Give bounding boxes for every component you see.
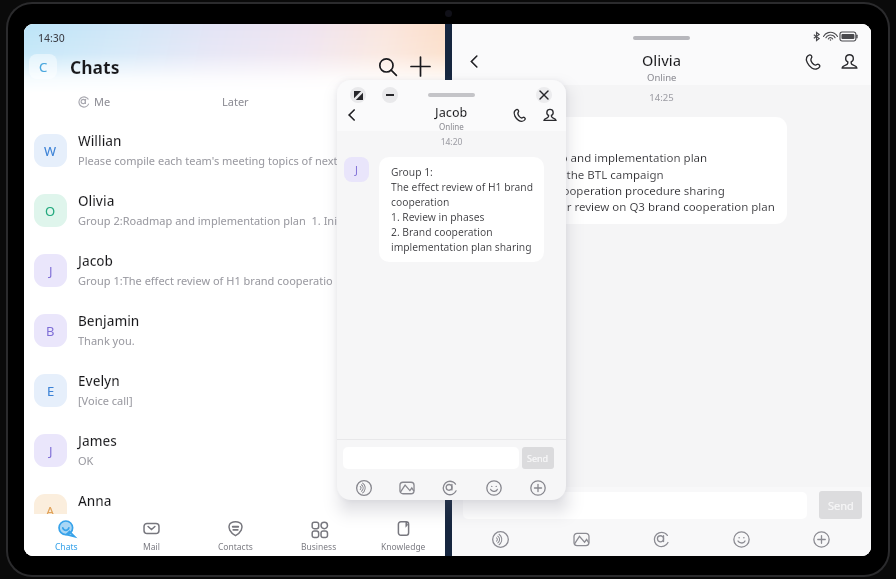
button[interactable]: Call [797,45,829,77]
staticText: Later [222,94,249,109]
staticText: J [49,262,53,280]
button[interactable] [463,492,807,519]
button[interactable]: Expand [350,87,366,103]
button[interactable]: tool3 [701,523,781,556]
button[interactable]: ftool2 [428,475,472,500]
staticText: Thank you. [78,333,135,348]
button[interactable]: tool2 [621,523,701,556]
staticText: Online [647,71,677,84]
staticText: O [45,202,56,220]
button[interactable]: Chats [24,514,109,556]
button[interactable]: Profile [537,102,563,128]
staticText: Group 1: The effect review of H1 brand c… [391,165,534,254]
button[interactable]: ftool0 [342,475,385,500]
staticText: E [47,382,55,400]
staticText: Group 2:Roadmap and implementation plan … [78,213,350,228]
button[interactable]: Knowledge [361,514,445,556]
staticText: Olivia [642,50,682,70]
button[interactable]: B [24,300,445,360]
staticText: James [78,432,117,450]
staticText: Mail [143,541,160,553]
button[interactable]: Mail [109,514,193,556]
button[interactable]: Search [372,51,403,82]
button[interactable]: tool1 [541,523,621,556]
staticText: Contacts [218,541,253,553]
button[interactable]: Minimize [382,87,398,103]
staticText: W [44,142,57,160]
button[interactable]: Business [277,514,361,556]
staticText: 14:20 [337,136,566,148]
staticText: Anna [78,492,112,510]
staticText: Business [301,541,337,553]
button[interactable]: Contacts [193,514,277,556]
button[interactable]: Profile [833,45,865,77]
staticText: C [39,58,48,76]
button[interactable]: C [29,54,57,79]
staticText: Jacob [78,252,113,270]
staticText: J [355,163,358,177]
staticText: Chats [55,541,78,553]
staticText: [Voice call] [78,393,133,408]
button[interactable]: Send [819,491,862,519]
button[interactable]: ftool4 [516,475,560,500]
button[interactable]: tool4 [781,523,861,556]
staticText: Group 1:The effect review of H1 brand co… [78,273,333,288]
staticText: Group 2:Roadmap and implementation plan … [469,150,775,214]
staticText: A [46,502,55,520]
staticText: 14:25 [452,91,871,104]
staticText: J [49,442,53,460]
button[interactable]: Me [24,82,165,120]
button[interactable]: Later [165,82,306,120]
staticText: 14:30 [38,31,65,45]
button[interactable]: Back [458,45,490,77]
staticText: Online [439,121,464,131]
button[interactable]: Call [507,102,533,128]
staticText: OK [78,453,94,468]
staticText: Chats [70,55,120,79]
button[interactable]: ftool1 [385,475,428,500]
button[interactable]: Back [339,102,365,128]
button[interactable]: Close [536,87,552,103]
button[interactable]: Send [522,447,554,469]
button[interactable]: W [24,120,445,180]
staticText: Benjamin [78,312,140,330]
button[interactable]: J [24,240,445,300]
button[interactable]: A [24,480,445,540]
staticText: Send [828,498,854,513]
staticText: Jacob [435,104,468,121]
staticText: Willian [78,132,122,150]
staticText: Me [94,94,111,109]
button[interactable]: ftool3 [472,475,516,500]
staticText: Please compile each team's meeting topic… [78,153,338,168]
button[interactable]: tool0 [460,523,541,556]
button[interactable]: O [24,180,445,240]
staticText: Evelyn [78,372,120,390]
button[interactable]: J [24,420,445,480]
button[interactable]: E [24,360,445,420]
staticText: Knowledge [381,541,426,553]
staticText: B [46,322,55,340]
button[interactable]: New chat [405,51,436,82]
staticText: Send [527,452,549,464]
staticText: Olivia [78,192,115,210]
